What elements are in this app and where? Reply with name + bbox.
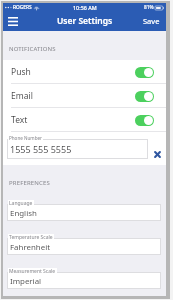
staticText: ROGERS	[13, 4, 32, 11]
staticText: 1555 555 5555	[10, 143, 72, 155]
button[interactable]: 1555 555 5555	[7, 135, 148, 159]
button[interactable]: Clear phone number	[148, 139, 166, 159]
button[interactable]: Push	[3, 60, 166, 84]
button[interactable]: English	[7, 200, 161, 221]
button[interactable]: Fahrenheit	[7, 234, 161, 255]
staticText: PREFERENCES	[9, 179, 50, 187]
button[interactable]: Text	[3, 108, 166, 132]
staticText: NOTIFICATIONS	[9, 45, 56, 53]
staticText: Push	[11, 66, 31, 78]
staticText: Measurement Scale	[9, 268, 56, 275]
staticText: 10:56 AM	[73, 4, 97, 11]
staticText: Save	[143, 16, 160, 26]
button[interactable]: Menu	[4, 12, 21, 30]
staticText: 81%	[144, 4, 154, 11]
staticText: Email	[11, 90, 33, 102]
staticText: Language	[9, 200, 33, 207]
staticText: Imperial	[10, 276, 42, 287]
button[interactable]: Save	[138, 13, 166, 29]
staticText: Fahrenheit	[10, 242, 51, 253]
button[interactable]: Imperial	[7, 268, 161, 289]
staticText: Phone Number	[9, 135, 42, 141]
button[interactable]: Email	[3, 84, 166, 108]
staticText: English	[10, 208, 37, 219]
staticText: Text	[11, 114, 28, 126]
staticText: User Settings	[57, 15, 113, 27]
staticText: Temperature Scale	[9, 234, 53, 241]
